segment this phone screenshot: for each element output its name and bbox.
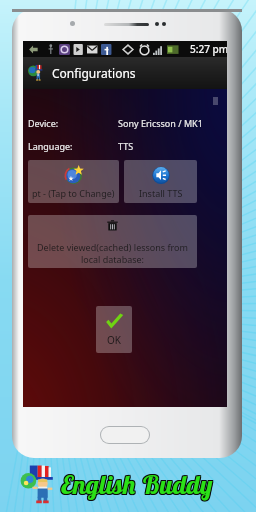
button[interactable]: Install TTS xyxy=(124,160,197,203)
staticText: English Buddy xyxy=(61,467,213,500)
staticText: TTS xyxy=(118,140,134,152)
staticText: Install TTS xyxy=(139,187,183,199)
staticText: English Buddy xyxy=(62,469,214,502)
staticText: English Buddy xyxy=(60,469,212,502)
button[interactable]: OK xyxy=(96,306,132,353)
staticText: English Buddy xyxy=(61,468,213,501)
button[interactable]: Home xyxy=(100,426,150,444)
staticText: pt - (Tap to Change) xyxy=(32,187,115,199)
staticText: English Buddy xyxy=(62,468,214,501)
staticText: OK xyxy=(107,333,121,347)
staticText: English Buddy xyxy=(62,467,214,500)
staticText: English Buddy xyxy=(61,469,213,502)
staticText: Sony Ericsson / MK1 xyxy=(118,117,203,129)
staticText: 5:27 pm xyxy=(190,42,227,56)
button[interactable]: Delete viewed(cached) lessons from local… xyxy=(28,215,197,268)
staticText: Configurations xyxy=(52,65,136,81)
button[interactable]: pt - (Tap to Change) xyxy=(28,160,119,203)
staticText: Delete viewed(cached) lessons from local… xyxy=(37,241,188,265)
staticText: English Buddy xyxy=(60,467,212,500)
staticText: Language: xyxy=(28,140,73,152)
staticText: English Buddy xyxy=(60,468,212,501)
staticText: Device: xyxy=(28,117,59,129)
